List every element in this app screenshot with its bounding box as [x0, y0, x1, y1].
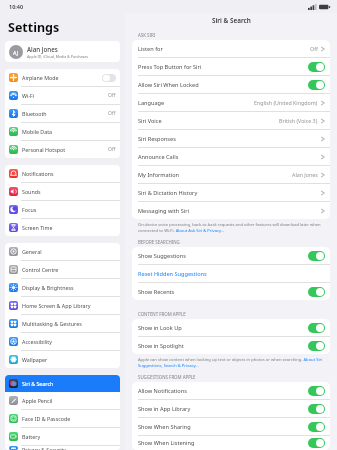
staticText: Allow Notifications [138, 387, 308, 395]
staticText: Notifications [22, 170, 116, 177]
staticText: General [22, 248, 116, 255]
button[interactable]: Reset Hidden Suggestions [132, 265, 330, 282]
button[interactable]: Press Top Button for Siri [132, 58, 330, 75]
staticText: British (Voice 3) [279, 117, 318, 124]
staticText: Airplane Mode [22, 74, 102, 81]
staticText: Wi-Fi [22, 92, 108, 99]
staticText: Apple can show content when looking up t… [138, 357, 327, 368]
staticText: Language [138, 99, 254, 107]
button[interactable]: Airplane Mode [5, 69, 120, 86]
button[interactable]: Language [132, 94, 330, 111]
staticText: Bluetooth [22, 110, 108, 117]
staticText: Home Screen & App Library [22, 302, 116, 309]
button[interactable]: Show Recents [132, 283, 330, 300]
staticText: 10:40 [9, 3, 24, 10]
button[interactable]: General [5, 243, 120, 260]
staticText: Alan Jones [27, 45, 58, 53]
staticText: Off [108, 92, 116, 99]
button[interactable]: AJ [5, 41, 120, 62]
staticText: Show in Spotlight [138, 342, 308, 350]
button[interactable]: Siri Responses [132, 130, 330, 147]
staticText: Control Centre [22, 266, 116, 273]
button[interactable]: Allow Notifications [132, 382, 330, 399]
button[interactable]: Toggle [308, 323, 325, 333]
staticText: Announce Calls [138, 153, 321, 161]
staticText: Battery [22, 433, 116, 440]
staticText: Siri & Search [22, 380, 116, 387]
staticText: Screen Time [22, 224, 116, 231]
button[interactable]: Control Centre [5, 261, 120, 278]
button[interactable]: Show in Spotlight [132, 337, 330, 354]
button[interactable]: Apple Pencil [5, 392, 120, 409]
staticText: Settings [8, 19, 60, 36]
button[interactable]: Announce Calls [132, 148, 330, 165]
staticText: Allow Siri When Locked [138, 81, 308, 89]
staticText: Focus [22, 206, 116, 213]
button[interactable]: Personal Hotspot [5, 141, 120, 158]
staticText: Privacy & Security [22, 446, 116, 450]
staticText: Multitasking & Gestures [22, 320, 116, 327]
staticText: Show Suggestions [138, 252, 308, 260]
staticText: SUGGESTIONS FROM APPLE [138, 374, 196, 380]
staticText: Messaging with Siri [138, 207, 321, 215]
button[interactable]: Focus [5, 201, 120, 218]
button[interactable]: Accessibility [5, 333, 120, 350]
staticText: Siri & Search [212, 16, 251, 25]
staticText: AJ [13, 49, 19, 56]
staticText: Mobile Data [22, 128, 116, 135]
button[interactable]: Sounds [5, 183, 120, 200]
staticText: Wallpaper [22, 356, 116, 363]
button[interactable]: Messaging with Siri [132, 202, 330, 219]
button[interactable]: Toggle [308, 422, 325, 432]
staticText: CONTENT FROM APPLE [138, 311, 186, 317]
button[interactable]: My Information [132, 166, 330, 183]
button[interactable]: Mobile Data [5, 123, 120, 140]
button[interactable]: Notifications [5, 165, 120, 182]
button[interactable]: Display & Brightness [5, 279, 120, 296]
button[interactable]: Show When Sharing [132, 418, 330, 435]
button[interactable]: Show When Listening [132, 436, 330, 450]
button[interactable]: Privacy & Security [5, 446, 120, 450]
button[interactable]: Siri & Dictation History [132, 184, 330, 201]
button[interactable]: Wallpaper [5, 351, 120, 368]
button[interactable]: Wi-Fi [5, 87, 120, 104]
staticText: Face ID & Passcode [22, 415, 116, 422]
staticText: Off [108, 146, 116, 153]
button[interactable]: Show Suggestions [132, 247, 330, 264]
staticText: Siri & Dictation History [138, 189, 321, 197]
button[interactable]: Battery [5, 428, 120, 445]
staticText: On-device voice processing, back-to-back… [138, 222, 327, 233]
staticText: Listen for [138, 45, 310, 53]
button[interactable]: Toggle [308, 404, 325, 414]
button[interactable]: Siri Voice [132, 112, 330, 129]
button[interactable]: Show in App Library [132, 400, 330, 417]
button[interactable]: Home Screen & App Library [5, 297, 120, 314]
button[interactable]: Allow Siri When Locked [132, 76, 330, 93]
staticText: Siri Responses [138, 135, 321, 143]
staticText: Press Top Button for Siri [138, 63, 308, 71]
button[interactable]: Bluetooth [5, 105, 120, 122]
button[interactable]: Siri & Search [5, 375, 120, 392]
staticText: Display & Brightness [22, 284, 116, 291]
staticText: Off [310, 45, 318, 52]
staticText: Accessibility [22, 338, 116, 345]
button[interactable]: Face ID & Passcode [5, 410, 120, 427]
staticText: Show in App Library [138, 405, 308, 413]
staticText: Personal Hotspot [22, 146, 108, 153]
staticText: My Information [138, 171, 292, 179]
button[interactable]: Listen for [132, 40, 330, 57]
button[interactable]: Multitasking & Gestures [5, 315, 120, 332]
button[interactable]: Toggle [308, 438, 325, 448]
button[interactable]: Toggle [308, 62, 325, 72]
button[interactable]: Toggle [308, 341, 325, 351]
button[interactable]: Toggle [308, 80, 325, 90]
button[interactable]: Toggle [308, 386, 325, 396]
staticText: Show When Listening [138, 439, 308, 447]
staticText: BEFORE SEARCHING [138, 239, 180, 245]
button[interactable]: Toggle [308, 251, 325, 261]
button[interactable]: Show in Look Up [132, 319, 330, 336]
button[interactable]: Toggle [308, 287, 325, 297]
staticText: Siri Voice [138, 117, 279, 125]
staticText: Alan Jones [292, 171, 318, 178]
button[interactable]: Screen Time [5, 219, 120, 236]
